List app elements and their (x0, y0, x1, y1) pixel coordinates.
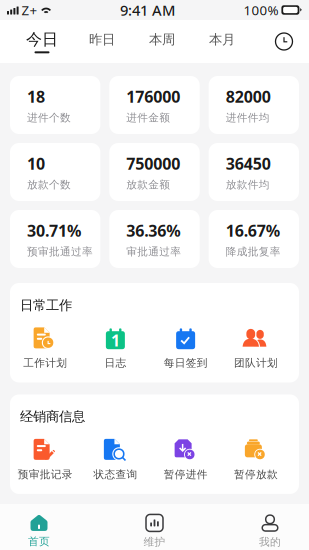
button[interactable]: 30.71% (10, 210, 100, 268)
staticText: 每日签到 (164, 356, 208, 369)
staticText: 放款金额 (126, 178, 170, 191)
button[interactable]: 状态查询 (80, 439, 150, 481)
staticText: 日志 (104, 356, 126, 369)
staticText: 放款件均 (226, 178, 270, 191)
staticText: 审批通过率 (126, 245, 181, 258)
button[interactable]: 18 (10, 76, 100, 134)
staticText: 36.36% (126, 220, 180, 241)
staticText: 日常工作 (20, 297, 72, 313)
button[interactable]: 今日 (12, 21, 72, 61)
button[interactable]: 750000 (109, 143, 200, 201)
button[interactable]: 我的 (255, 504, 285, 550)
button[interactable]: 维护 (139, 504, 169, 550)
staticText: 750000 (126, 153, 180, 174)
button[interactable]: 10 (10, 143, 100, 201)
staticText: 100% (243, 1, 278, 19)
staticText: 暂停进件 (164, 468, 208, 481)
button[interactable]: 工作计划 (10, 327, 80, 369)
staticText: Z+ (22, 1, 38, 19)
staticText: 预审批通过率 (27, 245, 93, 258)
staticText: 进件金额 (126, 111, 170, 124)
button[interactable]: 本月 (192, 21, 252, 61)
button[interactable]: 36.36% (109, 210, 200, 268)
staticText: 82000 (226, 86, 271, 107)
button[interactable]: 176000 (109, 76, 200, 134)
button[interactable]: 本周 (132, 21, 192, 61)
staticText: 本周 (149, 31, 175, 48)
button[interactable]: 暂停放款 (221, 439, 291, 481)
button[interactable]: 1 (80, 327, 150, 369)
staticText: 昨日 (89, 31, 115, 48)
staticText: 放款个数 (27, 178, 71, 191)
staticText: 36450 (226, 153, 271, 174)
staticText: 降成批复率 (226, 245, 281, 258)
staticText: 工作计划 (23, 356, 67, 369)
button[interactable]: 82000 (209, 76, 299, 134)
staticText: 我的 (259, 535, 281, 548)
button[interactable]: 首页 (24, 504, 54, 550)
staticText: 30.71% (27, 220, 81, 241)
staticText: 进件件均 (226, 111, 270, 124)
button[interactable]: 暂停进件 (150, 439, 221, 481)
button[interactable]: 16.67% (209, 210, 299, 268)
button[interactable]: History (267, 21, 301, 61)
staticText: 176000 (126, 86, 180, 107)
button[interactable]: 预审批记录 (10, 439, 80, 481)
staticText: 暂停放款 (234, 468, 278, 481)
button[interactable]: 每日签到 (150, 327, 221, 369)
button[interactable]: 昨日 (72, 21, 132, 61)
staticText: 16.67% (226, 220, 280, 241)
staticText: 9:41 AM (120, 0, 175, 20)
staticText: 10 (27, 153, 45, 174)
button[interactable]: 36450 (209, 143, 299, 201)
staticText: 18 (27, 86, 45, 107)
staticText: 状态查询 (93, 468, 137, 481)
staticText: 经销商信息 (20, 408, 85, 425)
staticText: 1 (111, 330, 120, 351)
staticText: 今日 (26, 30, 58, 49)
staticText: 团队计划 (234, 356, 278, 369)
staticText: 维护 (143, 535, 165, 548)
button[interactable]: 团队计划 (221, 327, 291, 369)
staticText: 本月 (209, 31, 235, 48)
staticText: 预审批记录 (18, 468, 73, 481)
staticText: 首页 (28, 535, 50, 548)
staticText: 进件个数 (27, 111, 71, 124)
